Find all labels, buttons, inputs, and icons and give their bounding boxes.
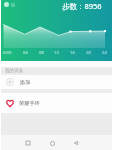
staticText: 步数：8956 [62, 1, 102, 11]
staticText: 添加 [20, 79, 31, 86]
staticText: 16 [70, 50, 75, 56]
staticText: 0:00 [3, 50, 12, 56]
staticText: 04 [23, 50, 28, 56]
staticText: 12 [54, 50, 59, 56]
button[interactable]: Recents [22, 137, 34, 149]
staticText: 荣耀手环 [19, 100, 40, 107]
button[interactable]: Home [46, 137, 58, 149]
button[interactable]: Back [70, 137, 82, 149]
button[interactable]: 荣耀手环 [1, 93, 112, 113]
staticText: 20 [86, 50, 91, 56]
staticText: 我的设备 [5, 68, 24, 74]
button[interactable]: 添加 [1, 75, 112, 89]
staticText: 08 [39, 50, 44, 56]
staticText: 24 [102, 50, 107, 56]
